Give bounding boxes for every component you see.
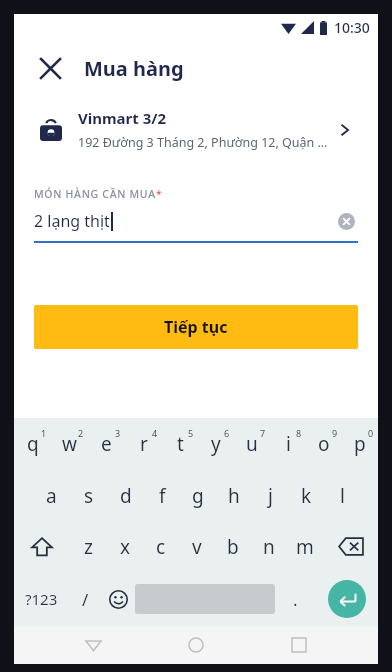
button[interactable]: /	[68, 572, 102, 626]
staticText: z	[84, 534, 93, 560]
button[interactable]: Emoji	[102, 572, 135, 626]
button[interactable]: v	[179, 521, 215, 572]
button[interactable]: .	[275, 572, 315, 626]
button[interactable]: Tiếp tục	[34, 305, 358, 349]
staticText: q	[27, 431, 39, 457]
staticText: l	[340, 483, 345, 509]
staticText: 9	[332, 427, 338, 439]
button[interactable]: f	[144, 470, 180, 521]
button[interactable]: i	[270, 418, 306, 470]
staticText: h	[228, 483, 240, 509]
staticText: 10:30	[334, 18, 370, 37]
button[interactable]: g	[180, 470, 216, 521]
staticText: 8	[296, 427, 302, 439]
staticText: .	[293, 588, 298, 611]
staticText: m	[296, 534, 314, 560]
button[interactable]: q	[14, 418, 51, 470]
staticText: *	[156, 187, 162, 201]
staticText: s	[84, 483, 94, 509]
button[interactable]: w	[51, 418, 88, 470]
staticText: g	[192, 483, 204, 509]
button[interactable]: Backspace	[323, 521, 378, 572]
staticText: Vinmart 3/2	[78, 108, 167, 128]
staticText: p	[354, 431, 366, 457]
staticText: e	[101, 431, 112, 457]
staticText: 2	[78, 427, 84, 439]
staticText: /	[82, 588, 89, 611]
staticText: MÓN HÀNG CẦN MUA	[34, 187, 156, 201]
staticText: 192 Đường 3 Tháng 2, Phường 12, Quận 10,…	[78, 134, 330, 151]
button[interactable]: Shift	[14, 521, 70, 572]
button[interactable]: l	[324, 470, 360, 521]
staticText: Mua hàng	[84, 55, 184, 82]
button[interactable]: p	[342, 418, 378, 470]
staticText: 7	[260, 427, 266, 439]
staticText: x	[120, 534, 131, 560]
staticText: n	[263, 534, 275, 560]
button[interactable]: a	[33, 470, 70, 521]
staticText: k	[301, 483, 312, 509]
button[interactable]: d	[107, 470, 144, 521]
staticText: a	[46, 483, 57, 509]
staticText: c	[156, 534, 166, 560]
staticText: 5	[188, 427, 194, 439]
button[interactable]: Close	[30, 48, 70, 88]
button[interactable]: Recents	[275, 626, 323, 664]
button[interactable]: s	[70, 470, 107, 521]
button[interactable]: x	[107, 521, 143, 572]
staticText: r	[140, 431, 148, 457]
staticText: 3	[115, 427, 121, 439]
staticText: j	[268, 483, 273, 509]
staticText: b	[227, 534, 239, 560]
button[interactable]: n	[251, 521, 287, 572]
staticText: o	[318, 431, 330, 457]
button[interactable]: Vinmart 3/2	[24, 96, 368, 163]
staticText: w	[62, 431, 77, 457]
button[interactable]: Back	[69, 626, 117, 664]
staticText: 6	[224, 427, 230, 439]
staticText: Tiếp tục	[164, 316, 228, 338]
staticText: ?123	[25, 589, 58, 609]
staticText: 1	[41, 427, 47, 439]
button[interactable]: ?123	[14, 572, 68, 626]
button[interactable]: h	[216, 470, 252, 521]
staticText: d	[120, 483, 132, 509]
staticText: 2 lạng thịt	[34, 210, 110, 232]
staticText: i	[286, 431, 291, 457]
staticText: v	[192, 534, 202, 560]
staticText: 0	[368, 427, 374, 439]
staticText: u	[246, 431, 258, 457]
button[interactable]: k	[288, 470, 324, 521]
button[interactable]: t	[162, 418, 198, 470]
button[interactable]: b	[215, 521, 251, 572]
staticText: y	[211, 431, 221, 457]
button[interactable]: r	[125, 418, 162, 470]
button[interactable]: u	[234, 418, 270, 470]
button[interactable]: z	[70, 521, 107, 572]
button[interactable]: Enter	[315, 572, 378, 626]
button[interactable]: Home	[172, 626, 220, 664]
button[interactable]: Clear	[334, 209, 358, 233]
button[interactable]: j	[252, 470, 288, 521]
button[interactable]: o	[306, 418, 342, 470]
staticText: t	[177, 431, 184, 457]
button[interactable]: m	[287, 521, 323, 572]
staticText: 4	[152, 427, 158, 439]
button[interactable]: e	[88, 418, 125, 470]
button[interactable]: c	[143, 521, 179, 572]
staticText: f	[159, 483, 166, 509]
button[interactable]: y	[198, 418, 234, 470]
